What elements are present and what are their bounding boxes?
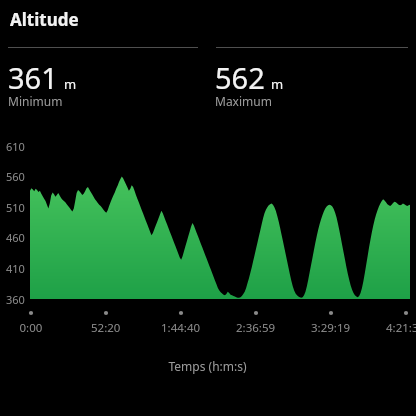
button[interactable]: Altitude chart xyxy=(0,0,416,416)
